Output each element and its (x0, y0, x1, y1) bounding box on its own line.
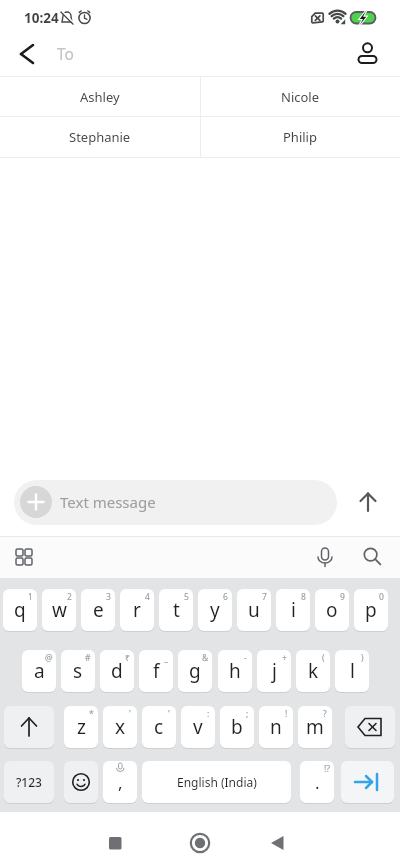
button[interactable]: q (3, 589, 37, 631)
button[interactable]: h (218, 650, 252, 692)
staticText: & (202, 652, 209, 664)
button[interactable]: English (India) (142, 761, 291, 803)
button[interactable] (64, 761, 98, 803)
button[interactable] (20, 486, 52, 518)
staticText: f (153, 658, 160, 684)
button[interactable] (10, 543, 38, 571)
button[interactable]: j (257, 650, 291, 692)
button[interactable]: y (198, 589, 232, 631)
button[interactable] (257, 823, 297, 863)
staticText: j (272, 658, 277, 684)
staticText: 10:24 (24, 9, 59, 27)
staticText: Text message (60, 492, 156, 512)
staticText: ?123 (16, 774, 42, 790)
button[interactable] (358, 543, 386, 571)
staticText: , (118, 771, 123, 794)
button[interactable]: k (296, 650, 330, 692)
button[interactable]: g (178, 650, 212, 692)
staticText: c (154, 714, 164, 740)
staticText: 9 (340, 591, 345, 603)
staticText: 2 (67, 591, 72, 603)
staticText: d (111, 658, 123, 684)
button[interactable]: t (159, 589, 193, 631)
staticText: : (207, 708, 210, 720)
button[interactable]: s (61, 650, 95, 692)
button[interactable]: x (103, 706, 137, 748)
staticText: Ashley (80, 88, 120, 106)
staticText: To (57, 43, 74, 63)
staticText: x (115, 714, 126, 740)
button[interactable]: b (220, 706, 254, 748)
button[interactable]: d (100, 650, 134, 692)
staticText: g (189, 658, 201, 684)
staticText: 7 (262, 591, 267, 603)
staticText: b (231, 714, 243, 740)
button[interactable]: v (181, 706, 215, 748)
button[interactable]: e (81, 589, 115, 631)
staticText: @ (45, 652, 53, 664)
button[interactable] (8, 38, 46, 70)
staticText: e (93, 597, 104, 623)
staticText: ) (361, 652, 364, 664)
button[interactable]: p (354, 589, 388, 631)
button[interactable]: l (335, 650, 369, 692)
staticText: v (193, 714, 203, 740)
button[interactable]: m (298, 706, 332, 748)
button[interactable]: z (64, 706, 98, 748)
button[interactable] (341, 761, 394, 803)
button[interactable] (180, 823, 220, 863)
button[interactable] (0, 117, 200, 157)
staticText: 1 (28, 591, 33, 603)
button[interactable]: , (103, 761, 137, 803)
button[interactable]: r (120, 589, 154, 631)
button[interactable]: ?123 (4, 761, 54, 803)
button[interactable]: c (142, 706, 176, 748)
staticText: # (85, 652, 91, 664)
button[interactable] (352, 486, 384, 518)
staticText: _ (164, 652, 168, 664)
staticText: 3 (106, 591, 111, 603)
staticText: 6 (223, 591, 228, 603)
staticText: t (173, 597, 180, 623)
staticText: 0 (379, 591, 384, 603)
staticText: !? (324, 763, 330, 775)
staticText: Nicole (281, 88, 320, 106)
staticText: h (229, 658, 241, 684)
button[interactable]: n (259, 706, 293, 748)
staticText: ' (168, 708, 170, 720)
button[interactable]: i (276, 589, 310, 631)
staticText: n (270, 714, 282, 740)
button[interactable]: . (300, 761, 334, 803)
button[interactable] (0, 77, 200, 116)
staticText: ' (129, 708, 131, 720)
button[interactable]: o (315, 589, 349, 631)
button[interactable] (95, 823, 135, 863)
staticText: ₹ (125, 652, 130, 664)
staticText: l (350, 658, 355, 684)
staticText: + (282, 652, 287, 664)
staticText: o (326, 597, 338, 623)
button[interactable] (201, 77, 400, 116)
button[interactable]: w (42, 589, 76, 631)
button[interactable]: u (237, 589, 271, 631)
staticText: u (248, 597, 260, 623)
button[interactable] (4, 706, 54, 748)
staticText: 5 (184, 591, 189, 603)
button[interactable]: a (22, 650, 56, 692)
button[interactable]: f (139, 650, 173, 692)
staticText: w (52, 597, 67, 623)
staticText: z (77, 714, 86, 740)
staticText: Philip (283, 128, 317, 146)
staticText: k (308, 658, 319, 684)
button[interactable] (14, 480, 337, 525)
staticText: ! (285, 708, 288, 720)
staticText: Stephanie (69, 128, 131, 146)
button[interactable] (311, 543, 339, 571)
staticText: 8 (301, 591, 306, 603)
button[interactable] (201, 117, 400, 157)
button[interactable] (350, 36, 384, 68)
staticText: English (India) (177, 774, 257, 790)
staticText: . (315, 771, 320, 794)
staticText: y (210, 597, 220, 623)
button[interactable] (345, 706, 395, 748)
